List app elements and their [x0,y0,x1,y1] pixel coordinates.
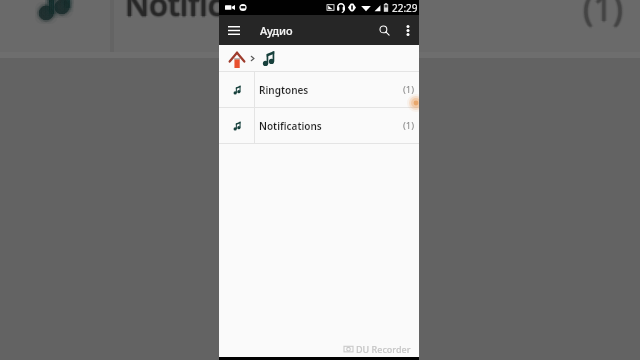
button[interactable]: More options [398,15,417,45]
staticText: (1) [582,0,622,31]
staticText: (1) [583,0,623,32]
staticText: Notific [125,0,223,25]
staticText: (1) [584,0,624,31]
button[interactable]: Menu [219,15,249,45]
staticText: Notific [125,0,223,26]
staticText: Notific [125,0,223,27]
staticText: (1) [585,0,625,31]
staticText: (1) [583,0,623,29]
staticText: Notific [124,0,222,25]
staticText: (1) [403,119,415,132]
button[interactable]: Ringtones [219,72,419,107]
staticText: (1) [583,0,623,31]
staticText: Notific [123,0,221,25]
staticText: Notific [126,0,224,25]
staticText: Notific [127,0,225,25]
staticText: Notifications [259,119,322,133]
staticText: (1) [583,0,623,33]
staticText: DU Recorder [356,343,411,355]
staticText: Notific [125,0,223,24]
staticText: (1) [581,0,621,31]
button[interactable]: Notifications [219,108,419,143]
staticText: (1) [583,0,623,30]
staticText: Аудио [260,23,293,38]
staticText: Ringtones [259,83,309,97]
staticText: Notific [125,0,223,23]
staticText: 22:29 [392,1,418,15]
button[interactable]: Home [219,45,254,71]
staticText: (1) [403,83,415,96]
button[interactable]: Search [371,15,397,45]
button[interactable]: Audio folder [259,45,278,71]
